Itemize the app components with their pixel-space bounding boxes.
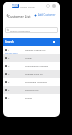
- staticText: 2: [8, 56, 10, 59]
- button[interactable]: Profile: [52, 4, 56, 8]
- staticText: ARK: [12, 4, 19, 8]
- staticText: 6: [8, 88, 10, 91]
- staticText: Search: [5, 40, 14, 44]
- staticText: Travel: [25, 56, 32, 59]
- staticText: 7: [8, 96, 10, 99]
- staticText: Omega Capital Inc: [25, 48, 46, 51]
- staticText: 3: [8, 64, 10, 67]
- staticText: Admin Portal: [20, 5, 35, 8]
- staticText: Customer List: [8, 14, 31, 19]
- button[interactable]: 5: [3, 78, 60, 86]
- button[interactable]: 6: [3, 86, 60, 94]
- button[interactable]: Add Customer: [34, 13, 56, 17]
- button[interactable]: 3: [3, 62, 60, 70]
- button[interactable]: Notifications: [46, 4, 50, 8]
- staticText: Foxhill: [25, 96, 33, 99]
- button[interactable]: Back: [5, 13, 9, 17]
- staticText: Add Customer: [38, 13, 56, 17]
- staticText: Platypus Inc: [25, 88, 39, 91]
- staticText: 5: [8, 80, 10, 83]
- button[interactable]: 1: [3, 46, 60, 54]
- staticText: Pineapple Holdings: [25, 80, 47, 83]
- button[interactable]: 4: [3, 70, 60, 78]
- staticText: Search customers: [10, 29, 30, 32]
- button[interactable]: 2: [3, 54, 60, 62]
- staticText: Watermelon Heights: [25, 64, 49, 67]
- staticText: om-inc-2981: [5, 52, 18, 55]
- button[interactable]: Search customers: [7, 27, 56, 33]
- staticText: 1: [8, 48, 10, 51]
- staticText: Orange Park Co: [25, 72, 43, 75]
- button[interactable]: 7: [3, 94, 60, 102]
- staticText: 4: [8, 72, 10, 75]
